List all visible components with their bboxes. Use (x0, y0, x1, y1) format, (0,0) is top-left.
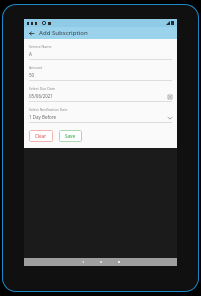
button[interactable]: Service Name (29, 44, 172, 60)
staticText: Amount (29, 65, 43, 70)
staticText: 1 Day Before (29, 114, 167, 120)
button[interactable]: Select Notification Date (29, 107, 172, 123)
button[interactable]: Amount (29, 65, 172, 81)
button[interactable]: Navigate up (26, 28, 36, 38)
staticText: A (29, 51, 172, 57)
staticText: Save (65, 133, 76, 139)
button[interactable]: Save (59, 130, 82, 142)
staticText: Add Subscription (39, 29, 88, 37)
button[interactable]: Expand options (167, 115, 172, 120)
button[interactable]: Select Due Date (29, 86, 172, 102)
button[interactable]: Clear date (167, 94, 172, 99)
button[interactable]: Recent apps (110, 258, 128, 266)
button[interactable]: Home (92, 258, 110, 266)
staticText: Clear (35, 133, 47, 139)
button[interactable]: Clear (29, 130, 53, 142)
staticText: Select Notification Date (29, 107, 68, 112)
staticText: 05/06/2021 (29, 93, 167, 99)
button[interactable]: Back (74, 258, 92, 266)
staticText: Select Due Date (29, 86, 55, 91)
staticText: Service Name (29, 44, 52, 49)
staticText: 50 (29, 72, 172, 78)
